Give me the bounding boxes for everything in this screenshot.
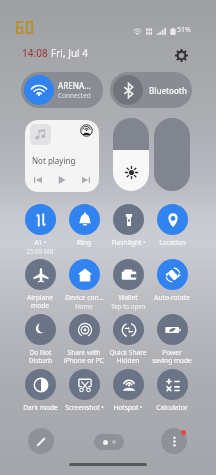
staticText: Connected [58,91,91,100]
staticText: Hotspot • [113,403,143,412]
button[interactable]: Play [54,172,70,188]
button[interactable]: Wallet [106,259,150,310]
button[interactable]: Volume [154,118,190,191]
button[interactable]: Dark mode [18,369,62,412]
button[interactable]: Previous [30,172,46,188]
button[interactable]: Power saving mode [150,314,194,365]
staticText: Power saving mode [152,348,192,365]
staticText: 51% [177,25,191,35]
staticText: Location [159,238,186,247]
staticText: Device con... [65,293,104,302]
button[interactable]: Bluetooth [110,72,192,108]
button[interactable]: Calculator [150,369,194,412]
button[interactable]: Device con... [62,259,106,310]
button[interactable]: Brightness [113,118,149,191]
button[interactable]: Location [150,204,194,247]
staticText: Calculator [156,403,188,412]
staticText: Bluetooth [149,85,187,96]
staticText: Not playing [32,155,76,166]
staticText: ARENA... [58,80,91,91]
button[interactable]: Page indicator [94,434,124,450]
staticText: Airplane mode [27,293,53,310]
staticText: Ring [77,238,91,247]
button[interactable]: Hotspot • [106,369,150,412]
button[interactable]: Quick Share Hidden [106,314,150,365]
button[interactable]: Media output [79,123,94,138]
staticText: Dark mode [23,403,58,412]
staticText: Home [75,302,93,310]
staticText: Tap to open [111,302,146,310]
staticText: Screenshot • [65,403,104,412]
button[interactable]: Edit [28,428,54,454]
button[interactable]: Screenshot • [62,369,106,412]
staticText: Wallet [118,293,138,302]
button[interactable]: Flashlight • [106,204,150,247]
button[interactable]: Ring [62,204,106,247]
button[interactable]: ARENA... [21,72,103,108]
staticText: Quick Share Hidden [109,348,147,365]
button[interactable]: A1 • [18,204,62,255]
staticText: 14:08 [22,46,48,60]
button[interactable]: More options [161,428,187,454]
button[interactable]: Share with iPhone or PC [62,314,106,365]
button[interactable]: Auto-rotate [150,259,194,302]
button[interactable]: Do Not Disturb [18,314,62,365]
staticText: Fri, Jul 4 [51,46,88,60]
button[interactable]: Settings [172,46,190,64]
staticText: Flashlight • [111,238,146,247]
button[interactable]: Next [78,172,94,188]
button[interactable]: Media output [25,120,99,192]
staticText: Share with iPhone or PC [64,348,104,365]
staticText: Auto-rotate [154,293,190,302]
staticText: Do Not Disturb [29,348,52,365]
staticText: A1 • [34,238,47,247]
staticText: 25.09 MB [26,247,54,255]
button[interactable]: Airplane mode [18,259,62,310]
